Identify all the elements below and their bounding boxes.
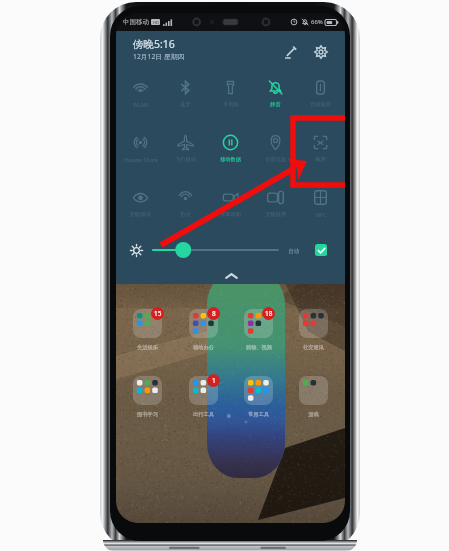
staticText: 生活娱乐 [137,344,158,351]
button[interactable] [296,306,331,341]
staticText: 自动 [288,247,300,254]
staticText: 蓝牙 [180,101,191,108]
button[interactable]: 编辑快捷开关 [279,41,301,63]
staticText: 18 [265,309,273,318]
button[interactable]: 蓝牙 [163,79,208,108]
button[interactable]: Huawei Share [118,134,163,163]
button[interactable]: 自动旋转 [298,79,343,108]
staticText: Huawei Share [124,156,158,163]
button[interactable]: WLAN [118,79,163,108]
staticText: HD [153,20,159,25]
staticText: 移动办公 [193,344,214,351]
staticText: 12月12日 星期四 [133,52,185,61]
button[interactable]: 静音 [253,79,298,108]
button[interactable]: 设置 [310,41,332,63]
button[interactable]: 无线投屏 [253,189,298,218]
button[interactable] [130,373,165,408]
staticText: 8 [212,309,216,318]
button[interactable]: 护眼模式 [118,189,163,218]
staticText: 常用工具 [248,411,269,418]
staticText: 图书学习 [137,411,158,418]
staticText: NFC [316,211,326,218]
staticText: 手电筒 [223,101,239,108]
staticText: 1 [212,376,216,385]
staticText: 出行工具 [193,411,214,418]
button[interactable]: 手电筒 [208,79,253,108]
button[interactable]: 自动亮度 [315,244,327,256]
button[interactable]: 截屏 [298,134,343,163]
staticText: WLAN [133,101,148,108]
button[interactable]: 热点 [163,189,208,218]
button[interactable]: 15 [130,306,165,341]
staticText: 游戏 [308,411,319,418]
staticText: 66% [311,18,323,26]
staticText: 购物、视频 [246,344,272,351]
button[interactable]: 收起 [220,269,242,283]
staticText: 自动旋转 [310,101,331,108]
staticText: 无线投屏 [265,211,286,218]
staticText: 移动数据 [220,156,241,163]
staticText: 位置信息 [265,156,286,163]
button[interactable]: 亮度 [151,242,280,258]
button[interactable]: NFC [298,189,343,218]
staticText: 飞行模式 [175,156,196,163]
button[interactable]: 1 [186,373,221,408]
button[interactable]: 位置信息 [253,134,298,163]
button[interactable]: 屏幕录制 [208,189,253,218]
staticText: 屏幕录制 [220,211,241,218]
staticText: 截屏 [315,156,326,163]
button[interactable] [241,373,276,408]
button[interactable] [296,373,331,408]
staticText: 护眼模式 [130,211,151,218]
staticText: 中国移动 [123,18,149,26]
staticText: 静音 [270,101,281,108]
staticText: 傍晚5:16 [133,37,175,51]
staticText: 热点 [180,211,191,218]
button[interactable]: 飞行模式 [163,134,208,163]
button[interactable]: 移动数据 [208,134,253,163]
button[interactable]: 8 [186,306,221,341]
button[interactable]: 18 [241,306,276,341]
staticText: 15 [154,309,162,318]
staticText: 社交通讯 [303,344,324,351]
